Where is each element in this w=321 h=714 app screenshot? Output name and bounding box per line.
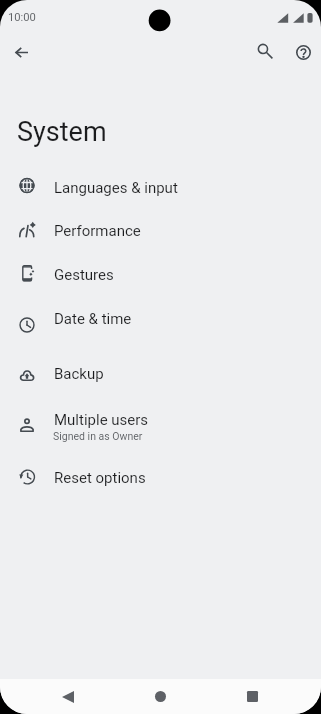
button[interactable]: Recents: [232, 679, 272, 714]
staticText: Performance: [54, 222, 141, 240]
button[interactable]: Languages & input: [0, 169, 321, 213]
staticText: Reset options: [54, 469, 146, 487]
staticText: Backup: [54, 365, 104, 383]
button[interactable]: Gestures: [0, 256, 321, 300]
button[interactable]: Performance: [0, 212, 321, 256]
staticText: Date & time: [54, 310, 132, 328]
button[interactable]: Home: [140, 679, 180, 714]
button[interactable]: Backup: [0, 355, 321, 399]
staticText: System: [17, 116, 107, 148]
staticText: Signed in as Owner: [53, 430, 143, 442]
button[interactable]: Back: [1, 32, 41, 72]
button[interactable]: Search: [245, 31, 285, 71]
button[interactable]: Help: [283, 32, 321, 72]
button[interactable]: Multiple users: [0, 401, 321, 445]
button[interactable]: Reset options: [0, 459, 321, 503]
button[interactable]: Date & time: [0, 300, 321, 344]
button[interactable]: Back: [48, 679, 88, 714]
staticText: 10:00: [8, 11, 36, 24]
staticText: Languages & input: [54, 179, 178, 197]
staticText: Gestures: [54, 266, 114, 284]
staticText: Multiple users: [54, 411, 149, 429]
